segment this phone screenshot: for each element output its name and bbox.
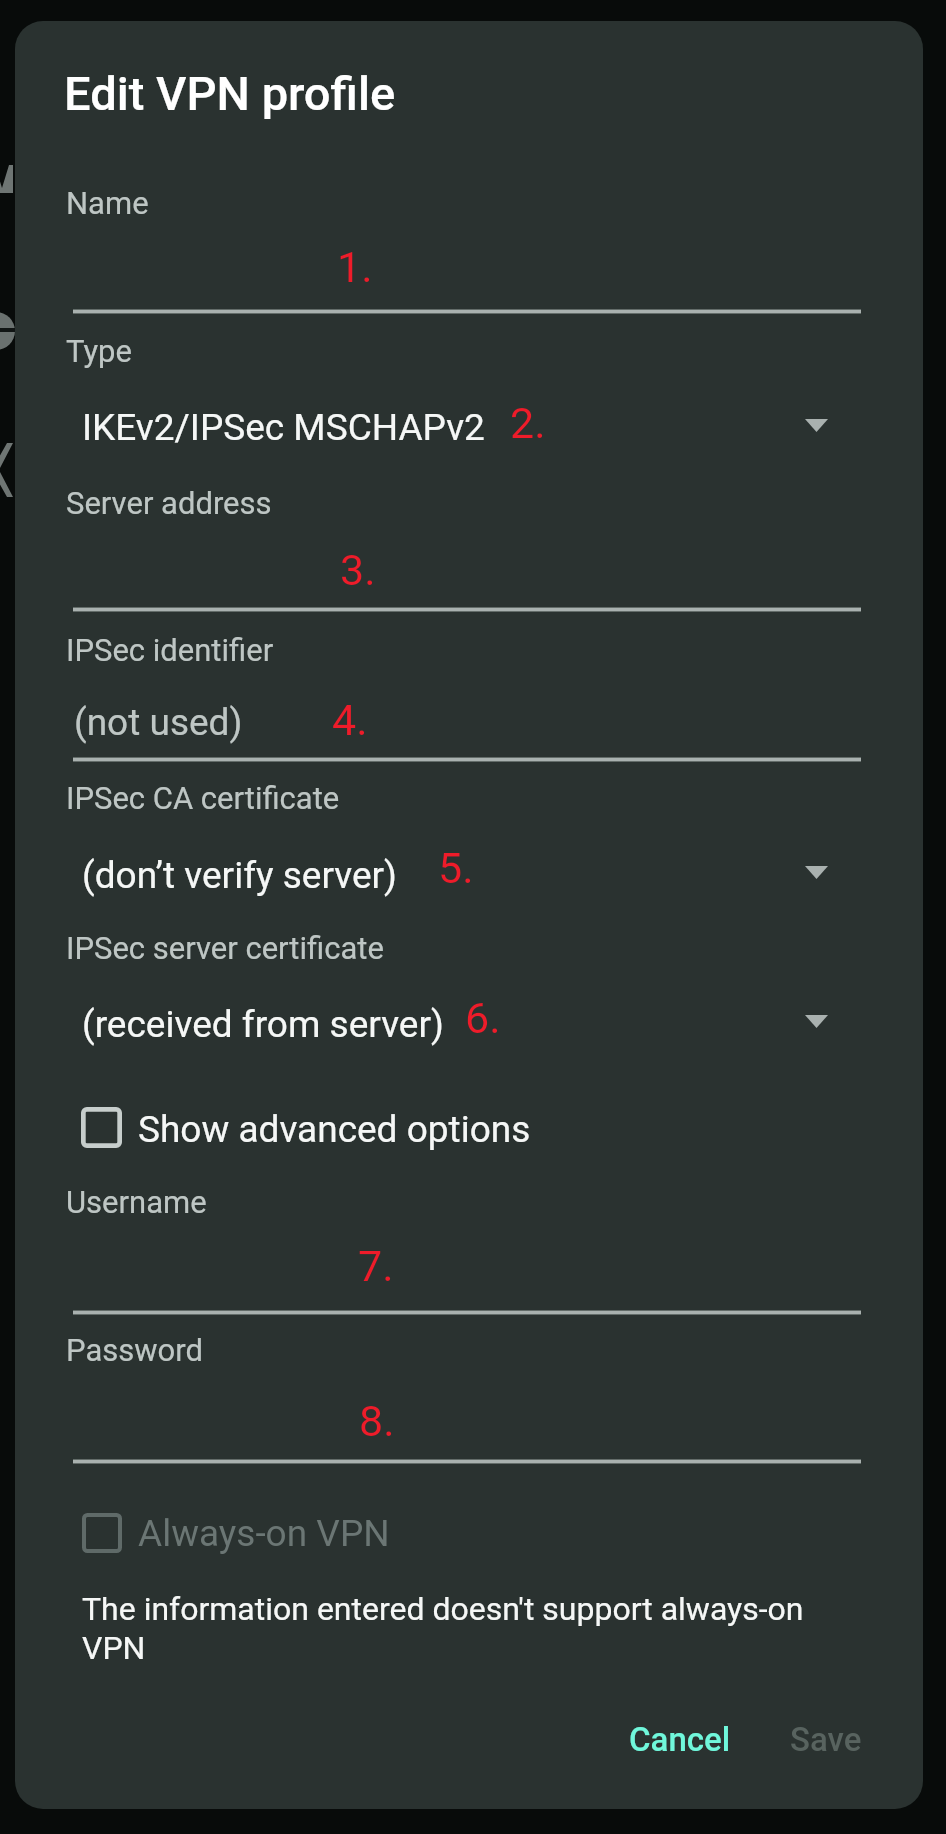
staticText: Save — [790, 1720, 862, 1759]
button[interactable]: Cancel — [608, 1706, 748, 1794]
staticText: 5. — [438, 843, 474, 893]
staticText: 8. — [359, 1396, 395, 1446]
staticText: VPN — [82, 1629, 146, 1667]
staticText: 2. — [510, 398, 546, 448]
staticText: IPSec server certificate — [66, 930, 384, 966]
staticText: 6. — [465, 993, 501, 1043]
staticText: (don’t verify server) — [82, 854, 398, 897]
button[interactable]: Username text field — [66, 1229, 861, 1313]
button[interactable]: IPSec CA certificate, don’t verify serve… — [66, 833, 861, 909]
staticText: (received from server) — [82, 1003, 444, 1046]
staticText: Show advanced options — [138, 1108, 531, 1151]
staticText: Name — [66, 185, 149, 221]
staticText: 1. — [337, 242, 373, 292]
button[interactable]: IPSec identifier text field — [66, 678, 861, 762]
button[interactable]: Type, IKEv2/IPSec MSCHAPv2 — [66, 386, 861, 462]
staticText: Edit VPN profile — [64, 66, 396, 121]
staticText: Server address — [66, 485, 272, 521]
button[interactable]: Name text field — [66, 230, 861, 314]
button[interactable]: Server address text field — [66, 530, 861, 613]
staticText: IPSec identifier — [66, 632, 274, 668]
button[interactable]: Password text field — [66, 1378, 861, 1462]
staticText: Type — [66, 333, 132, 369]
staticText: Always-on VPN — [138, 1512, 390, 1555]
staticText: Password — [66, 1332, 203, 1368]
staticText: 4. — [332, 695, 368, 745]
button[interactable]: Save — [772, 1706, 876, 1794]
staticText: The information entered doesn't support … — [82, 1590, 804, 1628]
staticText: (not used) — [74, 701, 243, 744]
staticText: Cancel — [629, 1720, 731, 1759]
staticText: IPSec CA certificate — [66, 780, 340, 816]
staticText: 3. — [340, 545, 376, 595]
staticText: Username — [66, 1184, 207, 1220]
staticText: IKEv2/IPSec MSCHAPv2 — [82, 406, 485, 449]
button[interactable]: Show advanced options — [70, 1096, 540, 1160]
staticText: 7. — [358, 1241, 394, 1291]
button[interactable]: IPSec server certificate, received from … — [66, 983, 861, 1059]
